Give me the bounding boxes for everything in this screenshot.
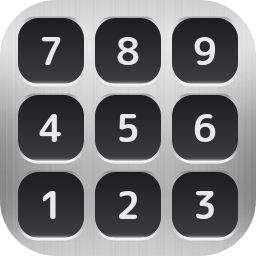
button[interactable]: 6	[172, 95, 238, 161]
staticText: 7	[39, 25, 63, 77]
button[interactable]: 2	[95, 172, 161, 238]
button[interactable]: 4	[18, 95, 84, 161]
staticText: 9	[193, 25, 217, 77]
button[interactable]: 3	[172, 172, 238, 238]
staticText: 5	[116, 102, 140, 154]
staticText: 3	[193, 179, 217, 231]
staticText: 2	[116, 179, 140, 231]
button[interactable]: 8	[95, 18, 161, 84]
button[interactable]: 9	[172, 18, 238, 84]
staticText: 4	[39, 102, 63, 154]
button[interactable]: 7	[18, 18, 84, 84]
staticText: 6	[193, 102, 217, 154]
button[interactable]: 1	[18, 172, 84, 238]
button[interactable]: 5	[95, 95, 161, 161]
staticText: 1	[39, 179, 63, 231]
staticText: 8	[116, 25, 140, 77]
